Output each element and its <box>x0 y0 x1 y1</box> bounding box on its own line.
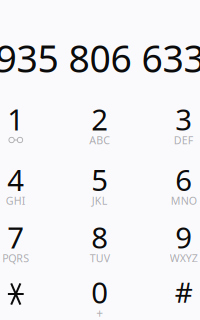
staticText: 3 <box>175 99 192 138</box>
staticText: TUV <box>90 251 110 265</box>
staticText: WXYZ <box>170 251 198 265</box>
button[interactable]: 8 <box>62 219 138 267</box>
staticText: # <box>175 273 193 311</box>
button[interactable]: 6 <box>146 161 200 209</box>
staticText: GHI <box>6 193 26 208</box>
staticText: 0 <box>91 272 108 311</box>
button[interactable]: 7 <box>0 219 54 267</box>
staticText: JKL <box>92 193 108 208</box>
button[interactable]: 5 <box>62 161 138 209</box>
button[interactable]: 3 <box>146 101 200 149</box>
staticText: 1 <box>7 99 24 138</box>
button[interactable]: star <box>0 274 54 320</box>
button[interactable]: 2 <box>62 101 138 149</box>
staticText: DEF <box>174 133 194 147</box>
staticText: + <box>96 305 103 320</box>
staticText: 9 <box>175 217 192 256</box>
staticText: MNO <box>171 193 197 208</box>
staticText: 4 <box>7 160 24 199</box>
staticText: 2 <box>91 99 108 138</box>
button[interactable]: 9 <box>146 219 200 267</box>
button[interactable]: 4 <box>0 161 54 209</box>
staticText: 6 <box>175 160 192 199</box>
button[interactable]: 0 <box>62 274 138 320</box>
staticText: ABC <box>89 133 110 147</box>
staticText: 5 <box>91 160 108 199</box>
staticText: 935 806 633 <box>0 33 200 83</box>
button[interactable]: 1 <box>0 101 54 149</box>
button[interactable]: pound <box>146 274 200 320</box>
staticText: 7 <box>7 217 24 256</box>
staticText: PQRS <box>2 251 29 265</box>
staticText: 8 <box>91 217 108 256</box>
